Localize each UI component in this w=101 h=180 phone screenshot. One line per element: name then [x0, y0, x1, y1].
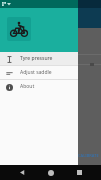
staticText: About: [20, 83, 35, 90]
staticText: CALIBRATE: [78, 153, 99, 158]
button[interactable]: App logo: [0, 8, 78, 52]
button[interactable]: Home: [44, 166, 57, 179]
button[interactable]: Back: [16, 166, 29, 179]
button[interactable]: Tyre pressure: [0, 52, 78, 65]
button[interactable]: Recent apps: [73, 166, 86, 179]
button[interactable]: About: [0, 80, 78, 93]
other: App logo: [7, 17, 31, 41]
button[interactable]: Adjust saddle: [0, 66, 78, 79]
staticText: Tyre pressure: [20, 55, 53, 62]
staticText: Adjust saddle: [20, 69, 52, 76]
